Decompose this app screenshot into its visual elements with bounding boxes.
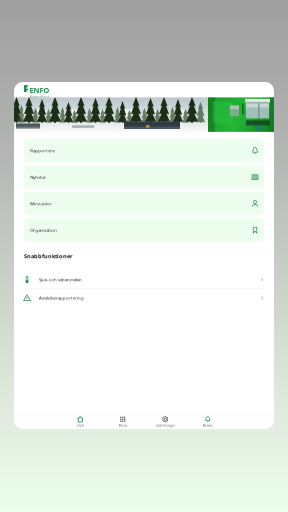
button[interactable]: Inställningar — [144, 414, 186, 429]
staticText: Avvikelserapportering — [39, 295, 84, 301]
button[interactable]: Nyheter — [24, 165, 264, 189]
button[interactable]: Meny — [101, 414, 144, 429]
staticText: ENFO — [29, 85, 49, 95]
button[interactable]: Mina sidor — [24, 192, 264, 215]
staticText: Nyheter — [30, 174, 46, 180]
staticText: Notiser — [203, 423, 213, 427]
button[interactable]: Organisation — [24, 218, 264, 242]
staticText: Rapportera — [30, 148, 54, 153]
staticText: Snabbfunktioner — [24, 252, 73, 260]
button[interactable]: Notiser — [186, 414, 229, 429]
button[interactable]: Rapportera — [24, 139, 264, 162]
button[interactable]: Avvikelserapportering — [14, 289, 274, 307]
staticText: Meny — [119, 423, 127, 427]
staticText: Sjuk- och vabanmälan — [39, 277, 82, 282]
staticText: Start — [77, 423, 84, 427]
button[interactable]: Sjuk- och vabanmälan — [14, 271, 274, 288]
staticText: Always ahead — [29, 95, 49, 99]
staticText: Organisation — [30, 227, 57, 233]
staticText: Mina sidor — [30, 201, 52, 206]
button[interactable]: Start — [59, 414, 101, 429]
staticText: Inställningar — [156, 423, 175, 427]
